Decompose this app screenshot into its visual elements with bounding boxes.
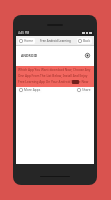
- staticText: Back: [83, 39, 91, 43]
- staticText: Share: [82, 88, 91, 92]
- staticText: Free Learning App On Your Android Phone …: [18, 80, 89, 84]
- button[interactable]: Back: [77, 38, 92, 44]
- staticText: More Apps: [24, 88, 41, 92]
- button[interactable]: Menu: [85, 53, 90, 58]
- staticText: One App From The List Below, Install And…: [18, 74, 88, 78]
- button[interactable]: Share: [76, 87, 92, 93]
- staticText: Which App You Want download Now, Choose …: [18, 68, 91, 72]
- staticText: ANDROID: [21, 53, 38, 58]
- button[interactable]: Home: [18, 38, 35, 44]
- button[interactable]: [72, 80, 79, 84]
- button[interactable]: More Apps: [18, 87, 42, 93]
- staticText: Home: [24, 39, 34, 43]
- staticText: Free Android Learning: [40, 39, 71, 43]
- staticText: 4:45 PM: [18, 31, 30, 35]
